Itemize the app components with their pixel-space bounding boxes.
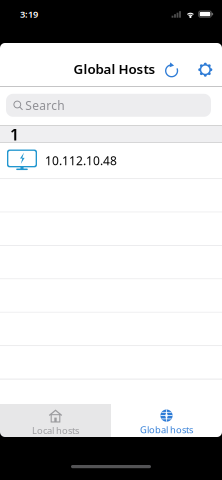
staticText: Global Hosts [73,60,155,78]
staticText: 10.112.10.48 [45,153,117,168]
button[interactable]: Search [6,94,211,117]
staticText: Global hosts [140,423,193,436]
button[interactable]: Local hosts [0,404,111,437]
button[interactable]: Settings [180,62,213,77]
button[interactable]: Global hosts [111,404,222,437]
button[interactable]: Refresh [164,62,180,77]
staticText: 3:19 [20,8,38,20]
button[interactable]: 10.112.10.48 [0,143,222,178]
staticText: Search [25,97,64,113]
staticText: Local hosts [32,424,79,437]
staticText: 1 [10,124,19,145]
